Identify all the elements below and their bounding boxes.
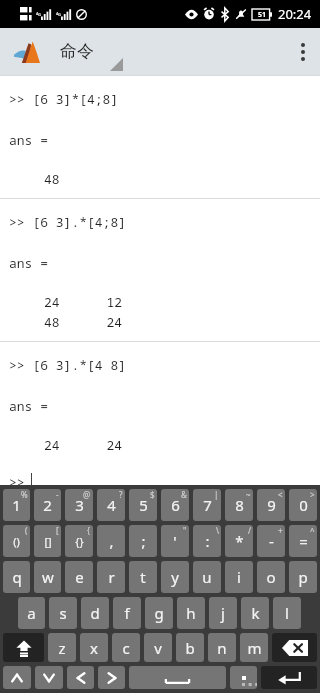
button[interactable]: 9 xyxy=(257,489,285,521)
button[interactable]: g xyxy=(145,597,173,629)
staticText: - xyxy=(269,531,274,551)
staticText: n xyxy=(217,638,227,658)
staticText: x xyxy=(90,638,98,658)
button[interactable]: 4 xyxy=(97,489,125,521)
staticText: g xyxy=(154,603,164,623)
button[interactable]: c xyxy=(112,633,140,662)
staticText: ( xyxy=(25,525,28,536)
staticText: / xyxy=(248,525,251,536)
button[interactable]: 8 xyxy=(225,489,253,521)
staticText: b xyxy=(185,638,195,658)
staticText: y xyxy=(171,567,179,587)
button[interactable]: x xyxy=(80,633,108,662)
button[interactable]: d xyxy=(81,597,109,629)
staticText: h xyxy=(186,603,196,623)
button[interactable]: l xyxy=(273,597,301,629)
button[interactable]: ; xyxy=(129,525,157,557)
staticText: 8 xyxy=(235,495,244,515)
button[interactable]: n xyxy=(208,633,236,662)
button[interactable]: h xyxy=(177,597,205,629)
button[interactable]: a xyxy=(18,597,45,629)
button[interactable]: Period xyxy=(230,666,257,689)
staticText: s xyxy=(59,603,67,623)
staticText: >> [6 3].*[4 8] xyxy=(9,356,127,374)
button[interactable]: t xyxy=(129,561,157,593)
button[interactable]: z xyxy=(48,633,76,662)
button[interactable]: Shift xyxy=(3,633,44,662)
button[interactable]: o xyxy=(257,561,285,593)
button[interactable]: q xyxy=(3,561,30,593)
button[interactable]: Backspace xyxy=(272,633,317,662)
button[interactable]: () xyxy=(3,525,30,557)
staticText: : xyxy=(205,531,210,551)
button[interactable]: j xyxy=(209,597,237,629)
staticText: >> [6 3].*[4;8] xyxy=(9,213,127,231)
button[interactable]: Left xyxy=(67,666,94,689)
staticText: \ xyxy=(216,525,219,536)
staticText: [] xyxy=(44,534,52,549)
button[interactable]: 0 xyxy=(289,489,317,521)
staticText: v xyxy=(154,638,162,658)
button[interactable]: i xyxy=(225,561,253,593)
button[interactable]: [] xyxy=(34,525,61,557)
staticText: 0 xyxy=(299,495,308,515)
button[interactable]: 5 xyxy=(129,489,157,521)
button[interactable]: u xyxy=(193,561,221,593)
button[interactable]: p xyxy=(289,561,317,593)
button[interactable]: e xyxy=(65,561,93,593)
button[interactable]: Up xyxy=(3,666,31,689)
button[interactable]: : xyxy=(193,525,221,557)
staticText: >> [6 3]*[4;8] xyxy=(9,90,119,108)
staticText: ^ xyxy=(310,525,315,536)
button[interactable]: 3 xyxy=(65,489,93,521)
staticText: u xyxy=(202,567,212,587)
staticText: | xyxy=(214,489,219,500)
button[interactable]: f xyxy=(113,597,141,629)
staticText: 6 xyxy=(171,495,180,515)
staticText: 24 24 xyxy=(44,436,123,454)
staticText: 51 xyxy=(258,10,267,20)
staticText: 4 xyxy=(107,495,116,515)
button[interactable]: , xyxy=(97,525,125,557)
staticText: {} xyxy=(75,534,84,549)
staticText: $ xyxy=(150,489,155,500)
button[interactable]: = xyxy=(289,525,317,557)
button[interactable]: More options xyxy=(286,28,320,75)
button[interactable]: b xyxy=(176,633,204,662)
button[interactable]: w xyxy=(34,561,61,593)
staticText: 24 12 xyxy=(44,293,123,311)
staticText: r xyxy=(108,567,115,587)
button[interactable]: {} xyxy=(65,525,93,557)
staticText: [ xyxy=(56,525,59,536)
button[interactable]: - xyxy=(257,525,285,557)
staticText: l xyxy=(285,603,289,623)
staticText: < xyxy=(278,489,283,500)
staticText: >> xyxy=(9,473,25,485)
staticText: 7 xyxy=(203,495,212,515)
button[interactable]: m xyxy=(240,633,268,662)
staticText: () xyxy=(13,534,20,549)
button[interactable]: * xyxy=(225,525,253,557)
staticText: o xyxy=(266,567,276,587)
button[interactable]: Space xyxy=(129,666,226,689)
button[interactable]: Down xyxy=(35,666,63,689)
button[interactable]: 7 xyxy=(193,489,221,521)
staticText: % xyxy=(21,489,28,500)
button[interactable]: r xyxy=(97,561,125,593)
button[interactable]: 2 xyxy=(34,489,61,521)
button[interactable]: Right xyxy=(98,666,125,689)
staticText: = xyxy=(299,531,308,551)
button[interactable]: ' xyxy=(161,525,189,557)
button[interactable]: Enter xyxy=(261,666,317,689)
staticText: + xyxy=(278,525,283,536)
button[interactable]: s xyxy=(49,597,77,629)
staticText: d xyxy=(90,603,100,623)
button[interactable]: 1 xyxy=(3,489,30,521)
staticText: ; xyxy=(141,531,146,551)
button[interactable]: y xyxy=(161,561,189,593)
staticText: * xyxy=(235,531,244,551)
button[interactable]: 6 xyxy=(161,489,189,521)
button[interactable]: k xyxy=(241,597,269,629)
staticText: z xyxy=(58,638,66,658)
button[interactable]: v xyxy=(144,633,172,662)
